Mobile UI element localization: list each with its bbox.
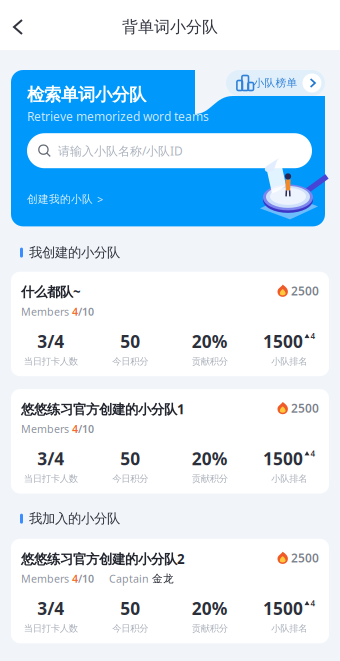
staticText: 悠悠练习官方创建的小分队1 [21, 400, 185, 418]
staticText: 今日积分 [112, 356, 148, 367]
staticText: 贡献积分 [192, 356, 228, 367]
staticText: 20% [192, 447, 228, 470]
staticText: 4 [310, 331, 315, 341]
button[interactable]: 小队榜单 [226, 70, 325, 96]
staticText: 小队排名 [271, 623, 307, 634]
button[interactable]: 什么都队~ [11, 272, 329, 376]
staticText: 小队排名 [271, 356, 307, 367]
staticText: Members [21, 572, 69, 586]
button[interactable]: 悠悠练习官方创建的小分队2 [11, 539, 329, 643]
staticText: 创建我的小队 [27, 193, 93, 206]
staticText: 贡献积分 [192, 623, 228, 634]
staticText: /10 [78, 572, 94, 586]
staticText: 4 [310, 448, 315, 459]
staticText: 什么都队~ [21, 283, 81, 300]
staticText: 20% [192, 330, 228, 353]
staticText: 4 [72, 304, 78, 319]
staticText: Captain [109, 572, 149, 586]
staticText: 4 [72, 422, 78, 436]
staticText: 50 [120, 597, 140, 620]
staticText: 1500 [263, 330, 303, 353]
staticText: Members [21, 304, 69, 319]
staticText: 当日打卡人数 [24, 356, 78, 367]
staticText: 我加入的小分队 [29, 510, 120, 527]
staticText: 今日积分 [112, 473, 148, 484]
staticText: 20% [192, 597, 228, 620]
staticText: /10 [78, 422, 94, 436]
staticText: 小队排名 [271, 473, 307, 484]
staticText: 3/4 [37, 447, 64, 470]
staticText: 当日打卡人数 [24, 473, 78, 484]
staticText: 1500 [263, 447, 303, 470]
staticText: 2500 [291, 400, 319, 416]
button[interactable]: 创建我的小队 [27, 192, 103, 206]
staticText: 50 [120, 447, 140, 470]
staticText: 2500 [291, 550, 319, 566]
staticText: 3/4 [37, 330, 64, 353]
staticText: 3/4 [37, 597, 64, 620]
staticText: 我创建的小分队 [29, 244, 120, 261]
staticText: 4 [72, 572, 78, 586]
staticText: 今日积分 [112, 623, 148, 634]
staticText: 请输入小队名称/小队ID [58, 143, 183, 159]
staticText: 1500 [263, 597, 303, 620]
staticText: 金龙 [152, 572, 174, 585]
staticText: > [97, 192, 103, 206]
staticText: 50 [120, 330, 140, 353]
staticText: 背单词小分队 [122, 17, 218, 37]
staticText: 2500 [291, 283, 319, 299]
button[interactable]: 请输入小队名称/小队ID [27, 133, 312, 168]
staticText: Retrieve memorized word teams [27, 108, 209, 124]
staticText: 小队榜单 [253, 76, 297, 89]
button[interactable]: 悠悠练习官方创建的小分队1 [11, 389, 329, 493]
button[interactable]: Back [3, 12, 33, 42]
staticText: Members [21, 422, 69, 436]
staticText: 悠悠练习官方创建的小分队2 [21, 550, 185, 568]
staticText: /10 [78, 304, 94, 319]
staticText: 检索单词小分队 [27, 84, 146, 105]
staticText: 当日打卡人数 [24, 623, 78, 634]
staticText: 贡献积分 [192, 473, 228, 484]
staticText: 4 [310, 598, 315, 608]
